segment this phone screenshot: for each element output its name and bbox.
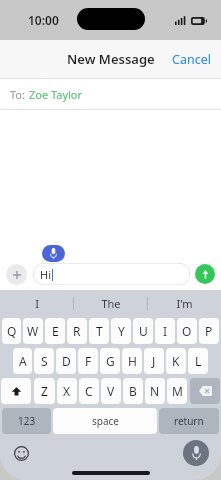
staticText: Hi xyxy=(40,267,51,282)
button[interactable]: U xyxy=(133,318,153,344)
button[interactable]: Add attachment xyxy=(6,264,27,285)
button[interactable]: Shift xyxy=(1,378,31,404)
staticText: Y xyxy=(118,323,125,339)
button[interactable]: The xyxy=(74,290,147,316)
staticText: T xyxy=(96,323,103,339)
button[interactable]: Y xyxy=(111,318,131,344)
staticText: P xyxy=(205,323,213,339)
staticText: M xyxy=(172,383,183,399)
button[interactable]: S xyxy=(34,348,54,374)
button[interactable]: V xyxy=(101,378,121,404)
button[interactable]: L xyxy=(188,348,208,374)
button[interactable]: N xyxy=(145,378,165,404)
staticText: O xyxy=(182,323,192,339)
button[interactable]: O xyxy=(177,318,197,344)
button[interactable]: M xyxy=(167,378,187,404)
staticText: L xyxy=(195,353,202,369)
staticText: I xyxy=(163,323,168,339)
staticText: I xyxy=(35,296,39,311)
staticText: Cancel xyxy=(172,51,211,68)
staticText: R xyxy=(73,323,81,339)
button[interactable]: B xyxy=(123,378,143,404)
staticText: Q xyxy=(7,323,17,339)
button[interactable]: E xyxy=(45,318,65,344)
staticText: E xyxy=(52,323,59,339)
staticText: K xyxy=(172,353,180,369)
staticText: Z xyxy=(41,383,48,399)
staticText: B xyxy=(129,383,137,399)
staticText: Zoe Taylor xyxy=(29,87,83,102)
staticText: N xyxy=(150,383,160,399)
staticText: I'm xyxy=(176,296,193,311)
button[interactable]: I xyxy=(155,318,175,344)
button[interactable]: A xyxy=(13,348,32,374)
button[interactable]: I xyxy=(0,290,73,316)
button[interactable]: Dictate xyxy=(42,245,65,262)
staticText: W xyxy=(27,323,39,339)
button[interactable]: 123 xyxy=(2,408,51,434)
staticText: D xyxy=(62,353,71,369)
button[interactable]: Send xyxy=(195,264,215,284)
staticText: 10:00 xyxy=(28,12,59,28)
staticText: New Message xyxy=(67,50,155,68)
staticText: A xyxy=(19,353,27,369)
staticText: C xyxy=(85,383,93,399)
staticText: G xyxy=(106,353,115,369)
button[interactable]: T xyxy=(89,318,109,344)
staticText: 123 xyxy=(18,414,36,428)
button[interactable]: J xyxy=(144,348,164,374)
staticText: space xyxy=(92,414,119,428)
staticText: return xyxy=(174,414,204,428)
button[interactable]: Backspace xyxy=(190,378,220,404)
button[interactable]: P xyxy=(199,318,219,344)
staticText: V xyxy=(107,383,115,399)
staticText: U xyxy=(139,323,148,339)
button[interactable]: Hi xyxy=(33,263,190,285)
staticText: X xyxy=(63,383,71,399)
button[interactable]: F xyxy=(78,348,98,374)
button[interactable]: W xyxy=(23,318,43,344)
button[interactable]: Q xyxy=(2,318,21,344)
button[interactable]: H xyxy=(122,348,142,374)
button[interactable]: D xyxy=(56,348,76,374)
button[interactable]: Z xyxy=(34,378,55,404)
staticText: H xyxy=(128,353,137,369)
button[interactable]: To: xyxy=(0,79,221,109)
button[interactable]: G xyxy=(100,348,120,374)
button[interactable]: K xyxy=(166,348,186,374)
button[interactable]: I'm xyxy=(148,290,221,316)
button[interactable]: R xyxy=(67,318,87,344)
button[interactable]: Emoji xyxy=(12,444,30,462)
button[interactable]: Cancel xyxy=(162,43,221,76)
button[interactable]: Voice input xyxy=(183,440,209,466)
button[interactable]: return xyxy=(159,408,219,434)
staticText: S xyxy=(41,353,48,369)
staticText: The xyxy=(101,296,121,311)
button[interactable]: space xyxy=(53,408,157,434)
staticText: J xyxy=(152,353,156,369)
staticText: To: xyxy=(10,87,25,102)
button[interactable]: X xyxy=(57,378,77,404)
button[interactable]: C xyxy=(79,378,99,404)
staticText: F xyxy=(85,353,92,369)
